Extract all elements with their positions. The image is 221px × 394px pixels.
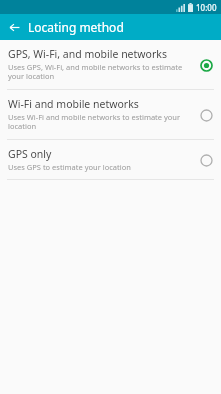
staticText: GPS, Wi-Fi, and mobile networks (8, 47, 167, 61)
button[interactable]: GPS only (0, 140, 221, 179)
staticText: Uses Wi-Fi and mobile networks to estima… (8, 112, 191, 132)
staticText: GPS only (8, 147, 52, 161)
staticText: Uses GPS to estimate your location (8, 162, 131, 172)
staticText: Locating method (28, 19, 124, 35)
button[interactable]: Wi-Fi and mobile networks (0, 90, 221, 139)
button[interactable]: Back (4, 17, 24, 37)
staticText: Wi-Fi and mobile networks (8, 97, 139, 111)
staticText: 10:00 (196, 2, 217, 13)
button[interactable]: GPS, Wi-Fi, and mobile networks (0, 40, 221, 89)
staticText: Uses GPS, Wi-Fi, and mobile networks to … (8, 62, 191, 82)
